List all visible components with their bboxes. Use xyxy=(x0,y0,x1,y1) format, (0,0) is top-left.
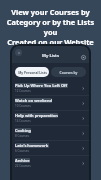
button[interactable]: Profile xyxy=(15,49,22,56)
button[interactable]: Settings xyxy=(81,55,86,60)
button[interactable]: Help with preparation xyxy=(12,111,89,125)
other: Open Watch on weekend xyxy=(81,101,86,106)
staticText: 8 Courses xyxy=(15,134,29,138)
staticText: Cooking xyxy=(15,128,31,133)
button[interactable]: Cooking xyxy=(12,126,89,140)
staticText: View your Courses by Category or by the … xyxy=(3,7,98,47)
other: Open Archive xyxy=(81,161,86,166)
staticText: Archive xyxy=(15,158,30,163)
button[interactable]: Pick Up Where You Left Off xyxy=(12,81,89,95)
staticText: My Personal Lists xyxy=(18,70,47,74)
button[interactable]: Watch on weekend xyxy=(12,96,89,110)
staticText: Help with preparation xyxy=(15,113,58,118)
staticText: Watch on weekend xyxy=(15,98,52,103)
button[interactable]: My Personal Lists xyxy=(15,67,49,77)
other: Open Late's homework xyxy=(81,146,86,151)
staticText: 10 Courses xyxy=(15,104,31,108)
staticText: My Lists xyxy=(42,53,60,59)
button[interactable]: Late's homework xyxy=(12,141,89,155)
staticText: Courses by Category xyxy=(52,70,85,74)
other: Open Cooking xyxy=(81,131,86,136)
staticText: 6 Courses xyxy=(15,149,29,153)
staticText: 22 Courses xyxy=(15,164,31,168)
button[interactable]: Archive xyxy=(12,156,89,170)
staticText: Pick Up Where You Left Off xyxy=(15,83,68,88)
other: Open Help with preparation xyxy=(81,116,86,121)
button[interactable]: Courses by Category xyxy=(51,67,86,77)
staticText: 14 Courses xyxy=(15,119,31,123)
staticText: Late's homework xyxy=(15,143,49,148)
other: Open Pick Up Where You Left Off xyxy=(81,86,86,91)
staticText: 12 Courses xyxy=(15,89,31,93)
